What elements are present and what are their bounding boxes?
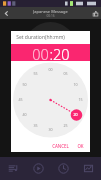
button[interactable]: Like: [89, 7, 101, 19]
staticText: 00: [48, 67, 53, 72]
button[interactable]: Back: [0, 7, 12, 19]
staticText: CANCEL: [52, 143, 69, 149]
button[interactable]: Timer: [51, 157, 76, 180]
staticText: Japanese Message: [33, 9, 68, 14]
button[interactable]: Graph: [76, 157, 101, 180]
button[interactable]: Playlist: [0, 157, 26, 180]
staticText: 15: [78, 97, 83, 102]
staticText: 45: [18, 97, 23, 102]
staticText: 35: [33, 123, 38, 128]
staticText: 50: [22, 82, 27, 87]
staticText: 10: [73, 82, 78, 87]
button[interactable]: CANCEL: [50, 141, 71, 151]
staticText: 55: [33, 71, 38, 76]
staticText: OK: [77, 143, 84, 149]
staticText: Set duration(hh:mm): [16, 34, 65, 41]
staticText: 05: [63, 71, 68, 76]
staticText: :20: [49, 44, 70, 61]
staticText: 25: [63, 123, 68, 128]
staticText: 00: [32, 44, 49, 61]
staticText: 00:16: [46, 14, 55, 18]
button[interactable]: OK: [75, 141, 86, 151]
staticText: 30: [48, 127, 53, 132]
staticText: 40: [22, 112, 27, 117]
button[interactable]: Play: [26, 157, 51, 180]
staticText: 20: [73, 112, 78, 117]
